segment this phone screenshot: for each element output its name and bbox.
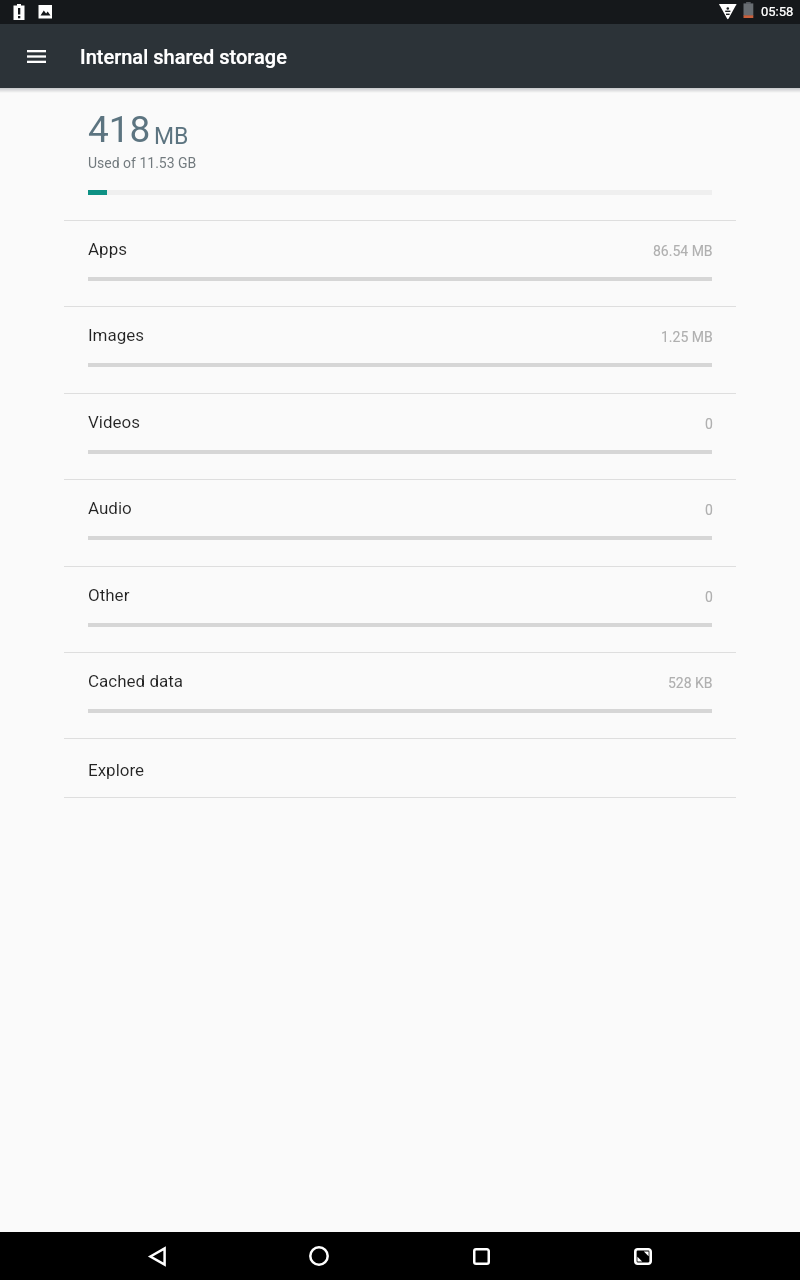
staticText: Explore (88, 760, 145, 780)
button[interactable]: Videos (0, 394, 800, 479)
staticText: Used of 11.53 GB (88, 155, 197, 171)
staticText: Internal shared storage (80, 45, 287, 68)
staticText: Videos (88, 412, 141, 432)
button[interactable]: Back (117, 1232, 197, 1280)
staticText: 0 (705, 416, 713, 432)
button[interactable]: Open navigation drawer (10, 30, 62, 82)
staticText: 1.25 MB (661, 329, 713, 345)
button[interactable]: Images (0, 307, 800, 392)
staticText: Audio (88, 498, 132, 518)
staticText: MB (154, 123, 189, 150)
staticText: Other (88, 585, 130, 605)
staticText: Images (88, 325, 145, 345)
button[interactable]: Home (279, 1232, 359, 1280)
staticText: Cached data (88, 671, 184, 691)
button[interactable]: Explore (0, 739, 800, 797)
staticText: 0 (705, 502, 713, 518)
button[interactable]: Take screenshot (603, 1232, 683, 1280)
staticText: 418 (88, 108, 151, 151)
button[interactable]: Other (0, 567, 800, 652)
button[interactable]: Cached data (0, 653, 800, 738)
staticText: 86.54 MB (653, 243, 713, 259)
button[interactable]: Audio (0, 480, 800, 565)
staticText: Apps (88, 239, 127, 259)
button[interactable]: Apps (0, 221, 800, 306)
button[interactable]: Recent apps (441, 1232, 521, 1280)
staticText: 528 KB (668, 675, 713, 691)
staticText: 05:58 (761, 4, 794, 19)
staticText: 0 (705, 589, 713, 605)
